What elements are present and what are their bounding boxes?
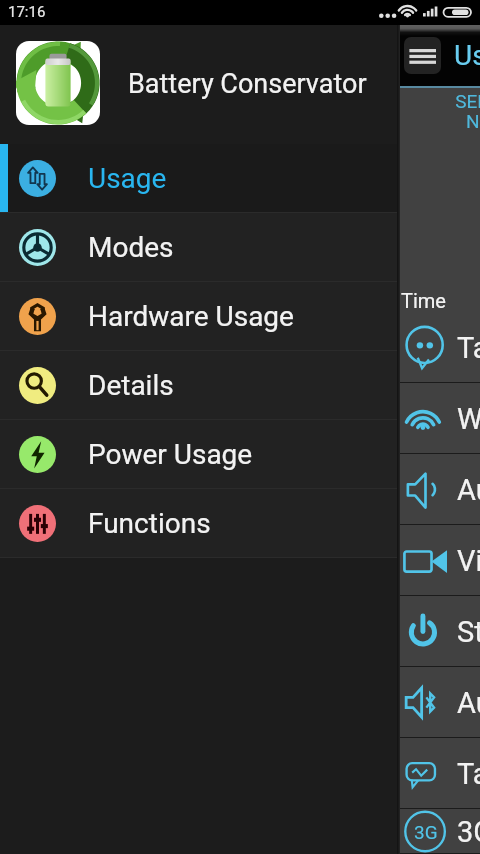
staticText: Battery Conservator: [128, 68, 367, 100]
button[interactable]: Power Usage: [0, 420, 397, 489]
staticText: Usage: [88, 162, 167, 195]
staticText: SELECT None: [455, 90, 480, 133]
staticText: Time Rem: [401, 289, 480, 335]
staticText: Usage: [454, 39, 480, 72]
staticText: Power Usage: [88, 438, 253, 471]
staticText: Hardware Usage: [88, 300, 294, 333]
staticText: Audio: [457, 473, 480, 507]
button[interactable]: Modes: [0, 213, 397, 282]
button[interactable]: Functions: [0, 489, 397, 558]
button[interactable]: Usage: [0, 144, 397, 213]
button[interactable]: Details: [0, 351, 397, 420]
staticText: Functions: [88, 507, 211, 540]
staticText: 17:16: [8, 3, 46, 21]
staticText: 3G: [414, 821, 438, 843]
button[interactable]: Audio: [400, 454, 480, 525]
staticText: Video: [457, 544, 480, 578]
button[interactable]: Audio: [400, 667, 480, 738]
button[interactable]: Standby: [400, 596, 480, 667]
button[interactable]: WiFi: [400, 383, 480, 454]
staticText: Details: [88, 369, 174, 402]
button[interactable]: Talk: [400, 312, 480, 383]
button[interactable]: Open navigation drawer: [404, 37, 441, 74]
staticText: Talk: [457, 757, 480, 791]
staticText: Talk: [457, 331, 480, 365]
button[interactable]: Video: [400, 525, 480, 596]
staticText: Standby: [457, 615, 480, 649]
button[interactable]: 3G: [400, 809, 480, 854]
staticText: Audio: [457, 686, 480, 720]
staticText: 3G: [457, 815, 480, 849]
staticText: WiFi: [457, 402, 480, 436]
button[interactable]: Talk: [400, 738, 480, 809]
staticText: Modes: [88, 231, 174, 264]
button[interactable]: Hardware Usage: [0, 282, 397, 351]
